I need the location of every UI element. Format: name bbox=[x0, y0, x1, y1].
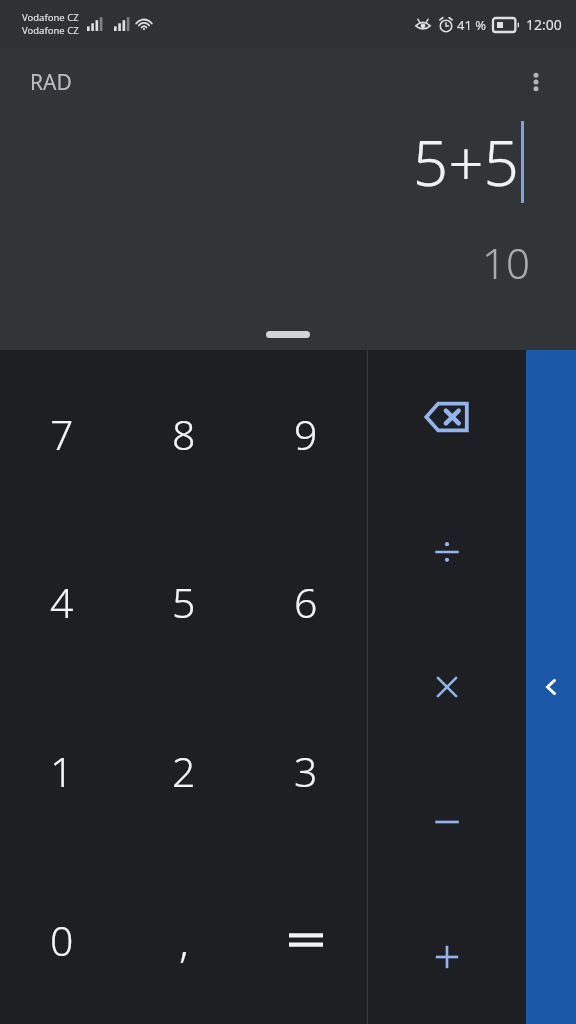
button[interactable]: More options bbox=[514, 60, 558, 104]
button[interactable]: 6 bbox=[245, 518, 367, 686]
button[interactable]: Minus bbox=[368, 754, 526, 889]
staticText: 3 bbox=[294, 743, 318, 799]
button[interactable]: Open advanced panel bbox=[526, 350, 576, 1024]
other: Plus bbox=[433, 943, 461, 971]
button[interactable]: Divide bbox=[368, 484, 526, 619]
staticText: Vodafone CZ bbox=[22, 11, 79, 24]
button[interactable]: RAD bbox=[30, 68, 72, 97]
staticText: 1 bbox=[50, 743, 74, 799]
staticText: 6 bbox=[294, 574, 318, 630]
other: Minus bbox=[433, 808, 461, 836]
staticText: 4 bbox=[50, 574, 74, 630]
button[interactable]: 3 bbox=[245, 686, 367, 855]
staticText: 0 bbox=[50, 912, 74, 968]
staticText: 7 bbox=[50, 406, 74, 462]
staticText: 41 % bbox=[457, 16, 487, 34]
button[interactable] bbox=[245, 855, 367, 1024]
staticText: 5+5 bbox=[412, 120, 519, 204]
other: Backspace bbox=[425, 401, 469, 433]
button[interactable]: 2 bbox=[123, 686, 245, 855]
button[interactable]: 4 bbox=[0, 518, 123, 686]
button[interactable]: 9 bbox=[245, 350, 367, 518]
staticText: 2 bbox=[172, 743, 196, 799]
button[interactable]: 1 bbox=[0, 686, 123, 855]
button[interactable]: 8 bbox=[123, 350, 245, 518]
staticText: Vodafone CZ bbox=[22, 24, 79, 37]
button[interactable]: Backspace bbox=[368, 350, 526, 484]
button[interactable]: Plus bbox=[368, 889, 526, 1024]
other: Multiply bbox=[434, 674, 460, 700]
staticText: 12:00 bbox=[526, 15, 562, 34]
button[interactable]: Multiply bbox=[368, 619, 526, 754]
staticText: 5 bbox=[172, 574, 196, 630]
other: Divide bbox=[433, 538, 461, 566]
button[interactable]: , bbox=[123, 855, 245, 1024]
button[interactable]: 0 bbox=[0, 855, 123, 1024]
button[interactable]: 7 bbox=[0, 350, 123, 518]
button[interactable]: 5 bbox=[123, 518, 245, 686]
staticText: 9 bbox=[294, 406, 318, 462]
staticText: 8 bbox=[172, 406, 196, 462]
staticText: 10 bbox=[482, 234, 530, 291]
button[interactable]: Expand history bbox=[266, 331, 310, 338]
staticText: , bbox=[179, 910, 189, 970]
